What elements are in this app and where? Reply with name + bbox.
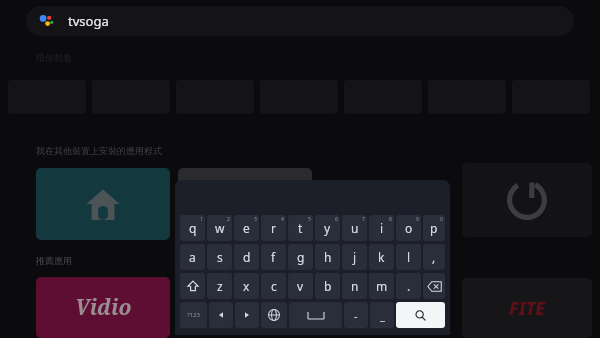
staticText: c bbox=[271, 278, 277, 294]
button[interactable]: Move left bbox=[209, 302, 233, 328]
staticText: e bbox=[243, 220, 250, 236]
staticText: y bbox=[324, 220, 331, 236]
staticText: a bbox=[189, 249, 196, 265]
button[interactable]: z bbox=[207, 273, 232, 299]
button[interactable]: Search bbox=[396, 302, 445, 328]
staticText: . bbox=[407, 278, 411, 294]
button[interactable]: Google Assistant bbox=[26, 6, 574, 36]
staticText: m bbox=[376, 278, 388, 294]
staticText: 5 bbox=[308, 216, 311, 223]
staticText: , bbox=[432, 249, 436, 265]
button[interactable]: Move right bbox=[235, 302, 259, 328]
button[interactable]: Symbols bbox=[180, 302, 207, 328]
staticText: - bbox=[354, 308, 358, 323]
staticText: g bbox=[297, 249, 305, 265]
staticText: l bbox=[407, 249, 411, 265]
button[interactable]: k bbox=[369, 244, 394, 270]
button[interactable] bbox=[462, 163, 592, 237]
button[interactable]: , bbox=[423, 244, 445, 270]
staticText: 7 bbox=[362, 216, 365, 223]
staticText: n bbox=[351, 278, 359, 294]
staticText: p bbox=[430, 220, 438, 236]
button[interactable]: b bbox=[315, 273, 340, 299]
staticText: s bbox=[217, 249, 223, 265]
staticText: 推薦應用 bbox=[36, 255, 72, 266]
staticText: j bbox=[353, 249, 357, 265]
button[interactable]: g bbox=[288, 244, 313, 270]
staticText: v bbox=[297, 278, 304, 294]
staticText: 2 bbox=[227, 216, 230, 223]
button[interactable]: v bbox=[288, 273, 313, 299]
button[interactable]: a bbox=[180, 244, 205, 270]
button[interactable]: Dash bbox=[344, 302, 368, 328]
staticText: tvsoga bbox=[68, 12, 109, 30]
button[interactable]: f bbox=[261, 244, 286, 270]
staticText: 6 bbox=[335, 216, 338, 223]
staticText: i bbox=[380, 220, 384, 236]
button[interactable]: y bbox=[315, 215, 340, 241]
staticText: z bbox=[217, 278, 223, 294]
staticText: w bbox=[215, 220, 225, 236]
staticText: 我在其他裝置上安裝的應用程式 bbox=[36, 145, 162, 156]
staticText: 4 bbox=[281, 216, 284, 223]
other: Google Assistant bbox=[38, 13, 54, 29]
staticText: f bbox=[271, 249, 276, 265]
button[interactable]: c bbox=[261, 273, 286, 299]
staticText: h bbox=[324, 249, 332, 265]
staticText: Vidio bbox=[75, 293, 132, 322]
staticText: d bbox=[243, 249, 251, 265]
staticText: u bbox=[351, 220, 359, 236]
button[interactable]: j bbox=[342, 244, 367, 270]
staticText: b bbox=[324, 278, 332, 294]
button[interactable]: Underscore bbox=[370, 302, 394, 328]
button[interactable]: . bbox=[396, 273, 421, 299]
staticText: r bbox=[271, 220, 276, 236]
button[interactable]: m bbox=[369, 273, 394, 299]
button[interactable]: d bbox=[234, 244, 259, 270]
button[interactable]: w bbox=[207, 215, 232, 241]
button[interactable]: u bbox=[342, 215, 367, 241]
button[interactable]: o bbox=[396, 215, 421, 241]
staticText: 猜你想看 bbox=[36, 52, 72, 63]
button[interactable]: h bbox=[315, 244, 340, 270]
staticText: 8 bbox=[389, 216, 392, 223]
staticText: 3 bbox=[254, 216, 257, 223]
button[interactable]: x bbox=[234, 273, 259, 299]
button[interactable]: Vidio bbox=[36, 277, 170, 338]
staticText: 9 bbox=[416, 216, 419, 223]
staticText: x bbox=[243, 278, 250, 294]
button[interactable]: n bbox=[342, 273, 367, 299]
staticText: ?123 bbox=[187, 311, 200, 319]
button[interactable]: e bbox=[234, 215, 259, 241]
staticText: FITE bbox=[509, 297, 545, 320]
button[interactable]: l bbox=[396, 244, 421, 270]
staticText: q bbox=[189, 220, 197, 236]
button[interactable]: s bbox=[207, 244, 232, 270]
button[interactable]: p bbox=[423, 215, 445, 241]
button[interactable]: r bbox=[261, 215, 286, 241]
button[interactable]: Backspace bbox=[423, 273, 445, 299]
button[interactable] bbox=[36, 168, 170, 240]
button[interactable]: Change language bbox=[261, 302, 287, 328]
button[interactable]: Shift bbox=[180, 273, 205, 299]
staticText: k bbox=[378, 249, 385, 265]
staticText: 0 bbox=[440, 216, 443, 223]
button[interactable] bbox=[178, 168, 312, 240]
staticText: _ bbox=[380, 308, 385, 323]
button[interactable]: q bbox=[180, 215, 205, 241]
staticText: t bbox=[298, 220, 303, 236]
button[interactable]: Space bbox=[289, 302, 342, 328]
staticText: o bbox=[405, 220, 413, 236]
button[interactable]: t bbox=[288, 215, 313, 241]
button[interactable]: FITE bbox=[462, 278, 592, 338]
button[interactable]: i bbox=[369, 215, 394, 241]
staticText: 1 bbox=[200, 216, 203, 223]
